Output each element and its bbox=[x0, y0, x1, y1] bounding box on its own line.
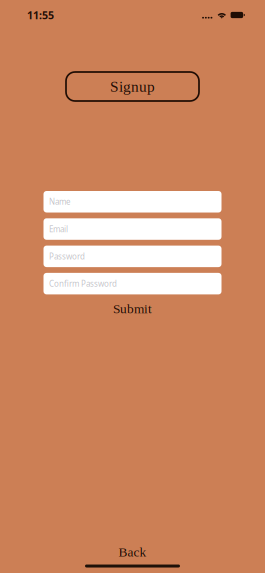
staticText: Submit bbox=[113, 301, 152, 316]
staticText: 11:55 bbox=[27, 8, 54, 22]
button[interactable]: Password bbox=[43, 246, 221, 267]
staticText: Confirm Password bbox=[49, 278, 117, 289]
button[interactable]: Email bbox=[43, 218, 221, 240]
button[interactable]: Name bbox=[43, 191, 221, 212]
staticText: Password bbox=[49, 251, 85, 262]
button[interactable]: Submit bbox=[103, 299, 162, 318]
button[interactable]: Signup bbox=[66, 72, 199, 101]
button[interactable]: Confirm Password bbox=[43, 273, 221, 294]
button[interactable]: Back bbox=[108, 543, 156, 561]
staticText: Back bbox=[118, 545, 146, 559]
staticText: Name bbox=[49, 196, 71, 207]
staticText: Email bbox=[49, 224, 68, 234]
staticText: Signup bbox=[110, 78, 155, 95]
